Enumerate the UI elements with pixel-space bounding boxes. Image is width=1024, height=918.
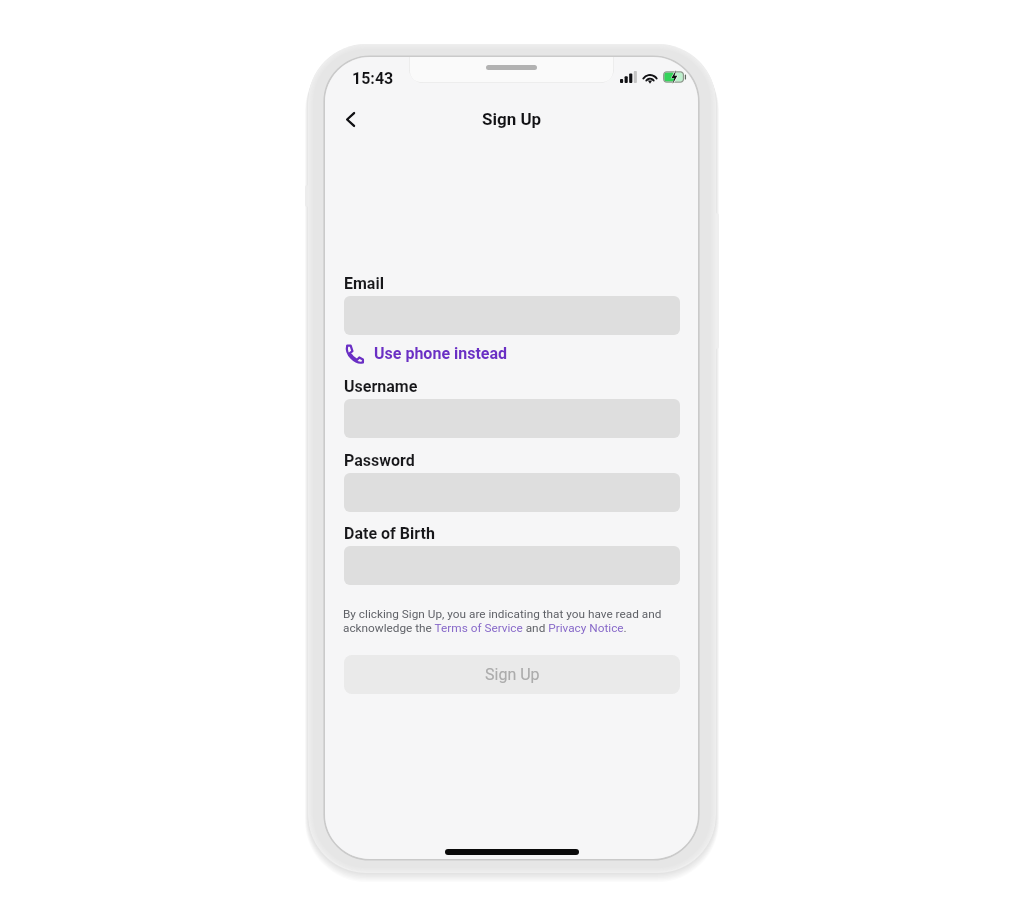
staticText: Sign Up <box>485 665 540 684</box>
staticText: Date of Birth <box>344 524 435 543</box>
other: Use phone instead <box>343 343 364 364</box>
staticText: Use phone instead <box>374 344 508 363</box>
staticText: By clicking Sign Up, you are indicating … <box>343 607 679 635</box>
button[interactable]: Sign Up <box>344 655 680 694</box>
button[interactable]: Privacy Notice <box>550 619 627 634</box>
button[interactable]: Use phone instead <box>343 342 508 364</box>
button[interactable]: Back <box>332 101 368 137</box>
button[interactable]: Terms of Service <box>433 619 519 634</box>
staticText: Password <box>344 451 415 470</box>
staticText: Email <box>344 274 384 293</box>
staticText: 15:43 <box>352 69 394 88</box>
staticText: Sign Up <box>482 109 542 129</box>
staticText: Username <box>344 377 418 396</box>
